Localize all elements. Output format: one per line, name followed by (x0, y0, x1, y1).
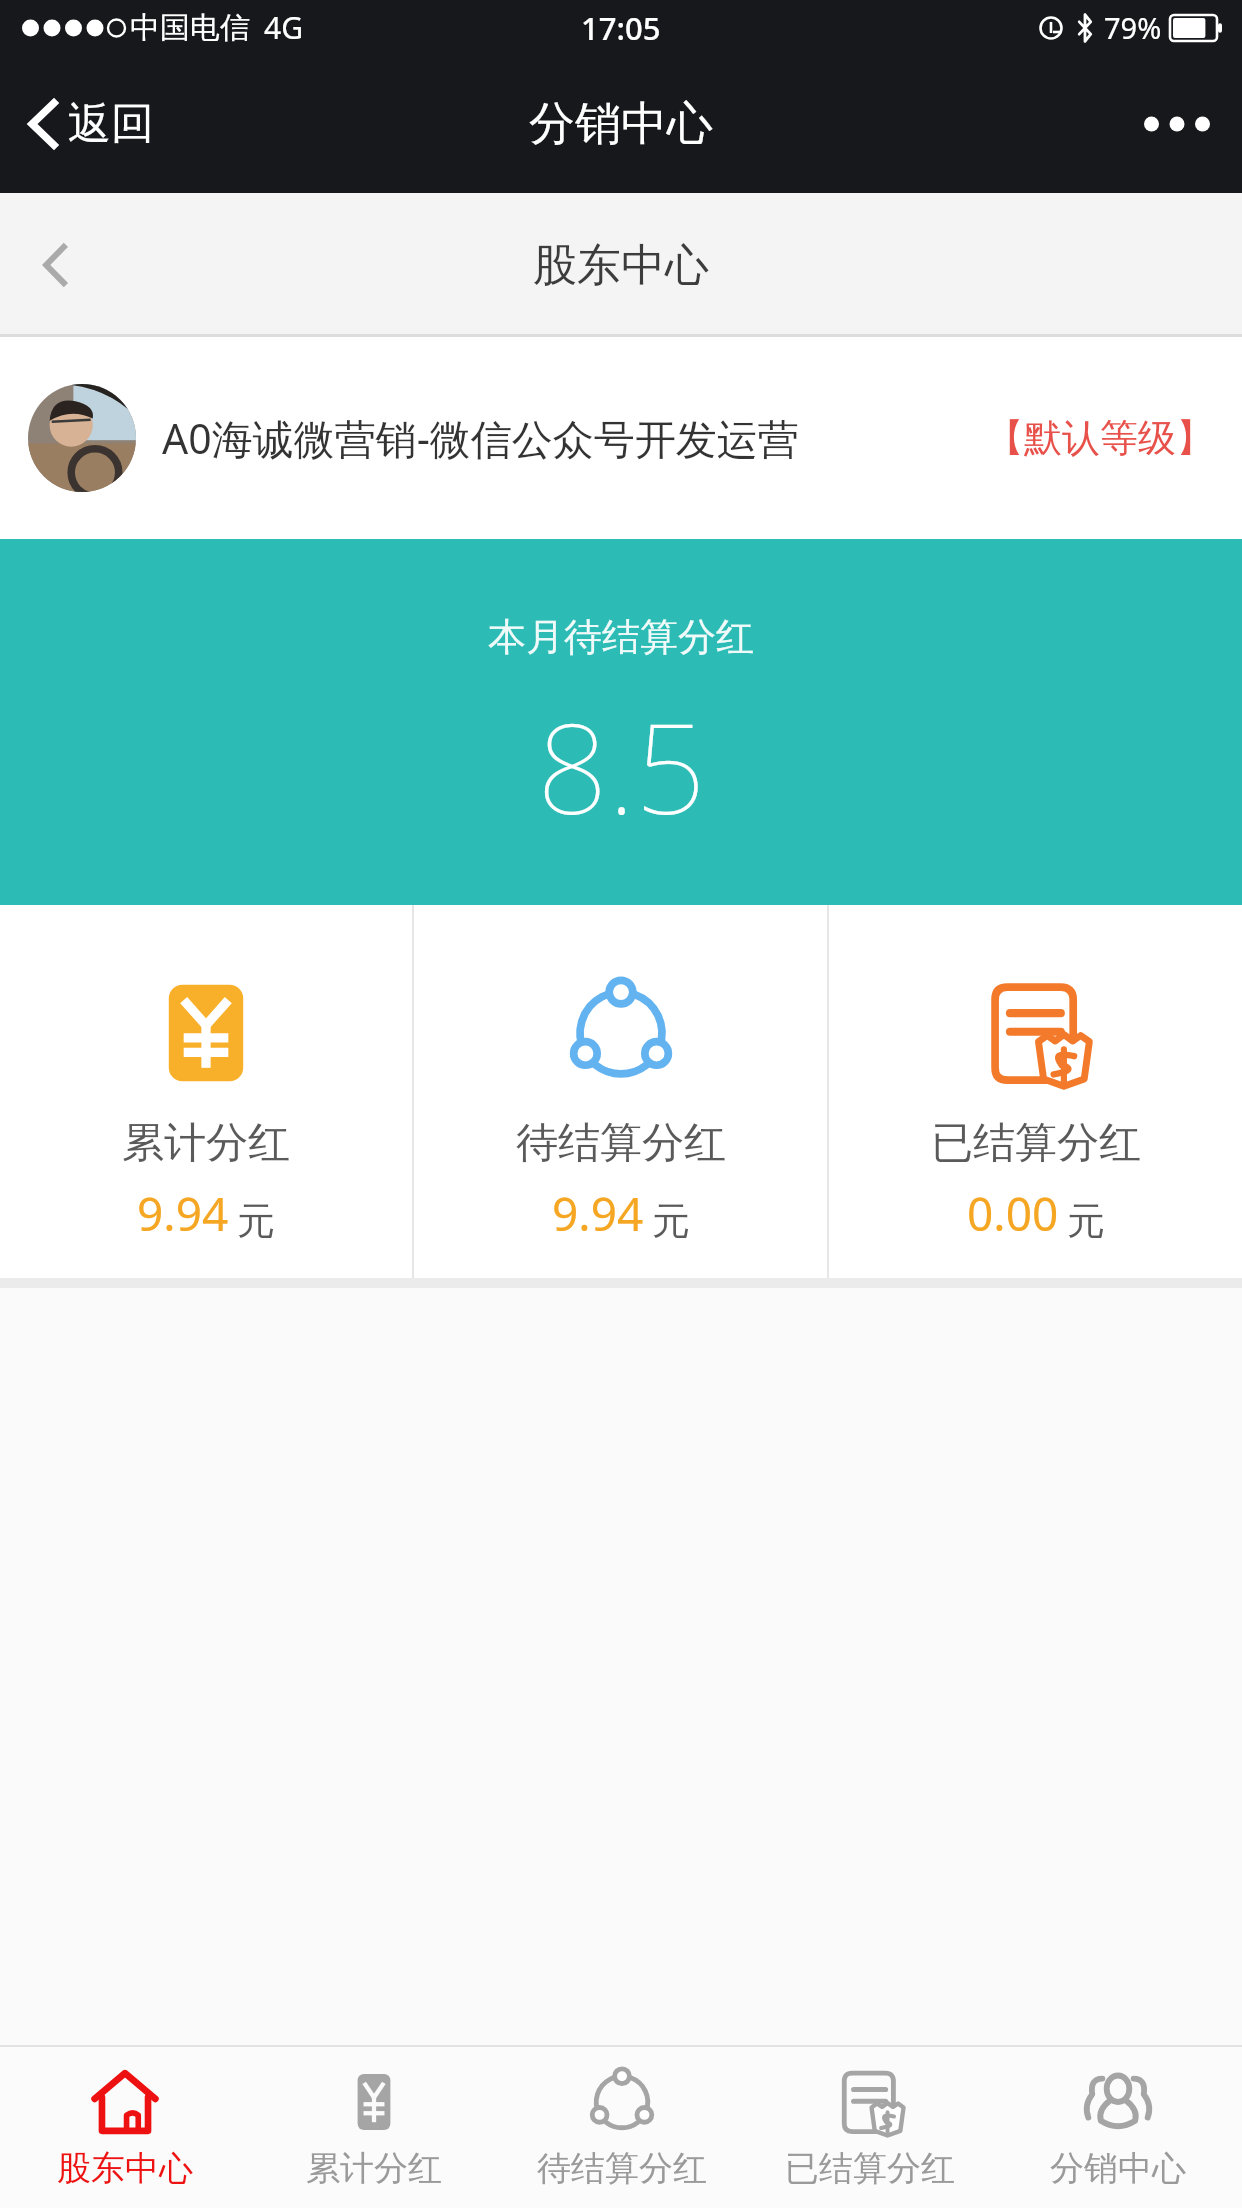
staticText: 17:05 (581, 7, 661, 49)
staticText: 股东中心 (533, 238, 709, 293)
button[interactable]: Back (0, 193, 110, 337)
staticText: 返回 (68, 97, 154, 151)
staticText: 股东中心 (57, 2147, 193, 2190)
staticText: 中国电信 (130, 9, 250, 47)
button[interactable]: 待结算分红 (498, 2047, 746, 2208)
staticText: 分销中心 (1050, 2147, 1186, 2190)
button[interactable]: 累计分红 (0, 905, 412, 1278)
staticText: 元 (1067, 1197, 1105, 1245)
button[interactable]: More options (1112, 55, 1242, 193)
staticText: 元 (652, 1197, 690, 1245)
staticText: 待结算分红 (516, 1117, 726, 1170)
staticText: 累计分红 (306, 2147, 442, 2190)
staticText: 已结算分红 (931, 1117, 1141, 1170)
staticText: 8.5 (537, 681, 706, 850)
button[interactable]: 返回 (0, 55, 178, 193)
button[interactable]: 累计分红 (249, 2047, 498, 2208)
staticText: 待结算分红 (537, 2147, 707, 2190)
staticText: 0.00 (967, 1182, 1059, 1245)
button[interactable]: 股东中心 (0, 2047, 249, 2208)
staticText: 9.94 (137, 1182, 229, 1245)
staticText: A0海诚微营销-微信公众号开发运营 (162, 410, 974, 466)
staticText: 已结算分红 (785, 2147, 955, 2190)
staticText: 元 (237, 1197, 275, 1245)
button[interactable]: 已结算分红 (829, 905, 1242, 1278)
button[interactable]: 待结算分红 (414, 905, 827, 1278)
staticText: 9.94 (552, 1182, 644, 1245)
staticText: 79% (1104, 8, 1162, 47)
staticText: 【默认等级】 (986, 414, 1214, 462)
button[interactable]: 已结算分红 (746, 2047, 994, 2208)
staticText: 4G (264, 7, 303, 48)
staticText: 本月待结算分红 (488, 613, 754, 661)
button[interactable]: A0海诚微营销-微信公众号开发运营 (0, 337, 1242, 539)
staticText: 分销中心 (529, 95, 713, 153)
button[interactable]: 分销中心 (994, 2047, 1242, 2208)
staticText: 累计分红 (122, 1117, 290, 1170)
